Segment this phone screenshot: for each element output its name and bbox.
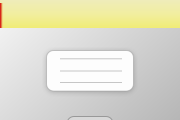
button[interactable]: Back: [0, 1, 3, 26]
button[interactable]: Action: [67, 116, 113, 120]
